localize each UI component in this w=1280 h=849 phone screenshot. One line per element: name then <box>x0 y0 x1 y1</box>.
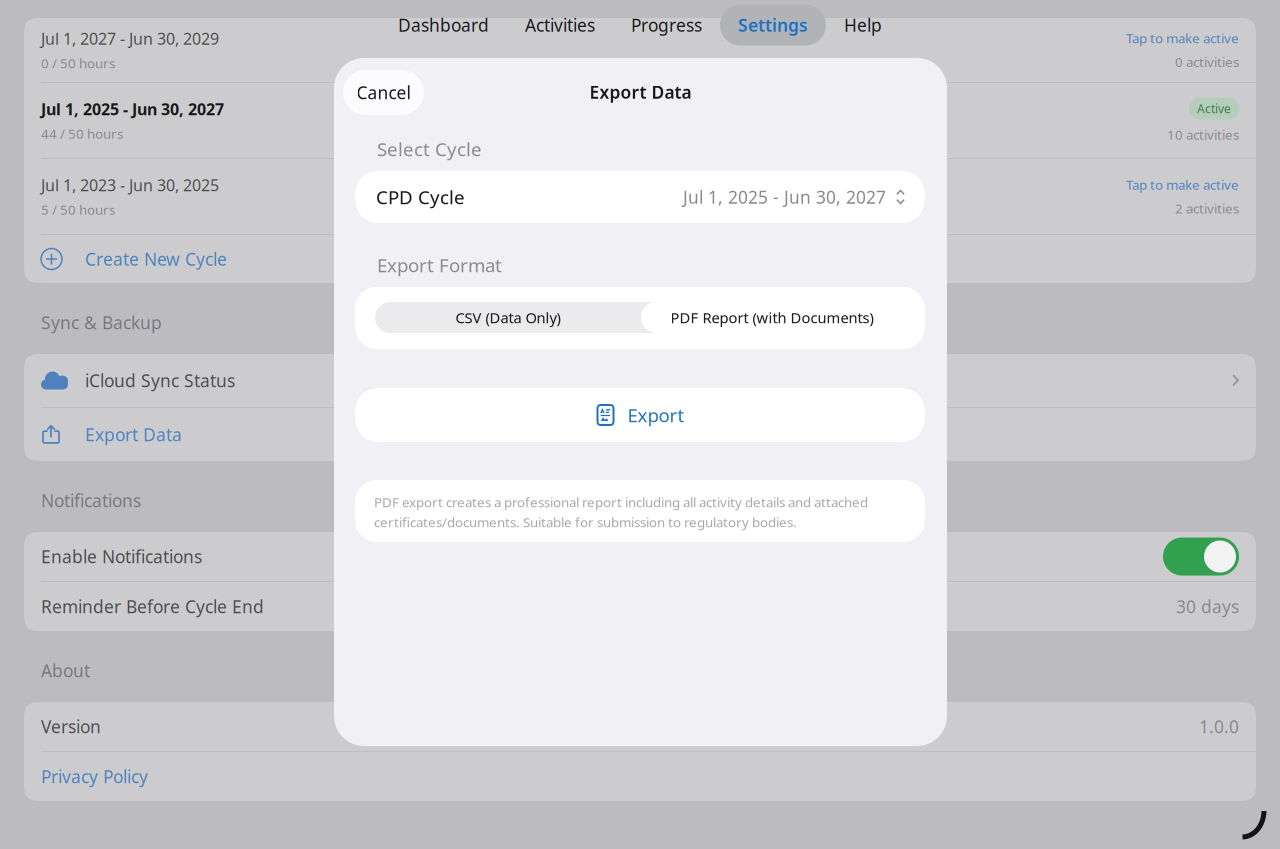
staticText: 5 / 50 hours <box>41 201 115 218</box>
staticText: Help <box>844 13 882 36</box>
staticText: Jul 1, 2025 - Jun 30, 2027 <box>683 185 886 208</box>
staticText: CSV (Data Only) <box>455 308 560 327</box>
staticText: certificates/documents. Suitable for sub… <box>374 513 797 531</box>
staticText: Dashboard <box>398 13 489 36</box>
staticText: 44 / 50 hours <box>41 125 123 142</box>
button[interactable]: Cancel <box>343 70 424 115</box>
staticText: Jul 1, 2023 - Jun 30, 2025 <box>41 174 219 196</box>
button[interactable]: iCloud Sync Status <box>24 354 1256 407</box>
staticText: 0 / 50 hours <box>41 54 115 72</box>
staticText: Jul 1, 2027 - Jun 30, 2029 <box>41 28 219 49</box>
button[interactable]: CSV (Data Only) <box>375 302 641 333</box>
staticText: 10 activities <box>1167 126 1239 143</box>
button[interactable]: Export <box>355 388 925 442</box>
button[interactable]: Create New Cycle <box>24 235 1256 283</box>
staticText: Export Data <box>589 80 691 103</box>
button[interactable]: Jul 1, 2025 - Jun 30, 2027 <box>24 83 1256 158</box>
staticText: Reminder Before Cycle End <box>41 595 264 618</box>
button[interactable]: Activities <box>507 4 613 45</box>
staticText: 0 activities <box>1175 53 1239 71</box>
staticText: Export <box>627 403 684 427</box>
staticText: Select Cycle <box>377 137 482 161</box>
staticText: Privacy Policy <box>41 765 148 788</box>
staticText: PDF export creates a professional report… <box>374 493 868 511</box>
staticText: Progress <box>631 13 702 36</box>
button[interactable]: Enable Notifications <box>24 532 1256 581</box>
staticText: Export Data <box>85 423 182 446</box>
staticText: PDF Report (with Documents) <box>670 308 873 327</box>
button[interactable]: Jul 1, 2023 - Jun 30, 2025 <box>24 159 1256 234</box>
button[interactable]: Dashboard <box>380 4 507 45</box>
button[interactable]: Jul 1, 2027 - Jun 30, 2029 <box>24 18 1256 82</box>
button[interactable]: CPD Cycle <box>355 171 925 223</box>
staticText: Enable Notifications <box>41 545 202 568</box>
button[interactable]: Privacy Policy <box>24 752 1256 801</box>
staticText: Active <box>1197 101 1231 117</box>
staticText: 1.0.0 <box>1199 715 1239 738</box>
staticText: Tap to make active <box>1126 176 1239 193</box>
staticText: Activities <box>525 13 595 36</box>
staticText: 30 days <box>1176 595 1239 618</box>
staticText: Tap to make active <box>1126 29 1239 47</box>
staticText: Jul 1, 2025 - Jun 30, 2027 <box>41 98 224 120</box>
staticText: Export Format <box>377 253 502 277</box>
staticText: About <box>41 659 90 682</box>
button[interactable]: PDF Report (with Documents) <box>641 302 903 333</box>
staticText: Create New Cycle <box>85 247 227 270</box>
staticText: Sync & Backup <box>41 311 162 334</box>
staticText: Settings <box>738 13 808 36</box>
button[interactable]: Settings <box>720 4 826 45</box>
button[interactable]: Export Data <box>24 408 1256 461</box>
button[interactable]: Help <box>826 4 900 45</box>
button[interactable]: Progress <box>613 4 720 45</box>
staticText: Cancel <box>356 81 410 104</box>
button[interactable]: Reminder Before Cycle End <box>24 582 1256 631</box>
staticText: 2 activities <box>1175 199 1239 217</box>
staticText: Version <box>41 715 101 738</box>
staticText: iCloud Sync Status <box>85 369 235 392</box>
staticText: CPD Cycle <box>376 185 465 209</box>
staticText: Notifications <box>41 489 141 512</box>
